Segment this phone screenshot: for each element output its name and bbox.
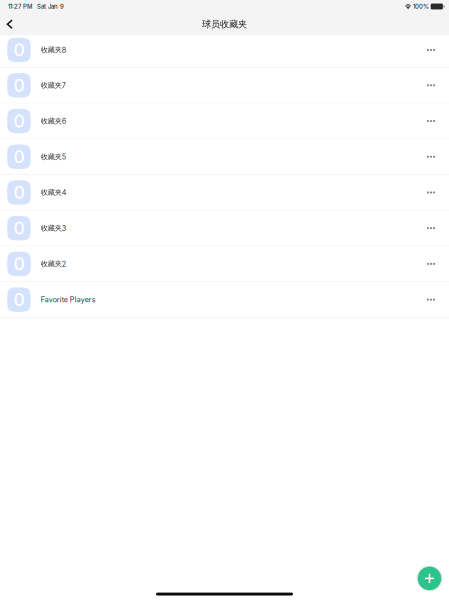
button[interactable]: More options (417, 139, 445, 174)
button[interactable]: Add folder (415, 564, 443, 592)
staticText: 100% (413, 3, 429, 10)
button[interactable]: 0 (0, 68, 449, 103)
button[interactable]: More options (417, 175, 445, 210)
staticText: 收藏夹7 (41, 81, 66, 90)
button[interactable]: More options (417, 282, 445, 317)
staticText: 0 (13, 217, 24, 239)
staticText: 0 (13, 146, 24, 167)
button[interactable]: Back (0, 13, 19, 35)
staticText: 球员收藏夹 (202, 18, 247, 30)
button[interactable]: 0 (0, 211, 449, 246)
staticText: 收藏夹3 (41, 224, 66, 233)
staticText: Favorite Players (41, 295, 96, 304)
staticText: 11:27 PM (8, 3, 32, 10)
staticText: 收藏夹4 (41, 188, 67, 197)
staticText: 0 (13, 253, 24, 275)
button[interactable]: More options (417, 68, 445, 103)
staticText: 收藏夹8 (41, 45, 66, 54)
button[interactable]: 0 (0, 282, 449, 318)
button[interactable]: More options (417, 246, 445, 281)
button[interactable]: 0 (0, 246, 449, 282)
staticText: 0 (13, 182, 24, 203)
staticText: 收藏夹5 (41, 152, 66, 161)
staticText: 0 (13, 39, 24, 61)
button[interactable]: More options (417, 34, 445, 66)
button[interactable]: More options (417, 103, 445, 138)
staticText: 0 (13, 289, 24, 310)
button[interactable]: 0 (0, 35, 449, 68)
staticText: 0 (13, 75, 24, 96)
button[interactable]: More options (417, 211, 445, 246)
staticText: Sat Jan 9 (37, 3, 64, 10)
staticText: 0 (13, 110, 24, 132)
button[interactable]: 0 (0, 175, 449, 211)
button[interactable]: 0 (0, 139, 449, 175)
staticText: 收藏夹2 (41, 259, 66, 268)
button[interactable]: 0 (0, 103, 449, 139)
staticText: 收藏夹6 (41, 116, 66, 126)
